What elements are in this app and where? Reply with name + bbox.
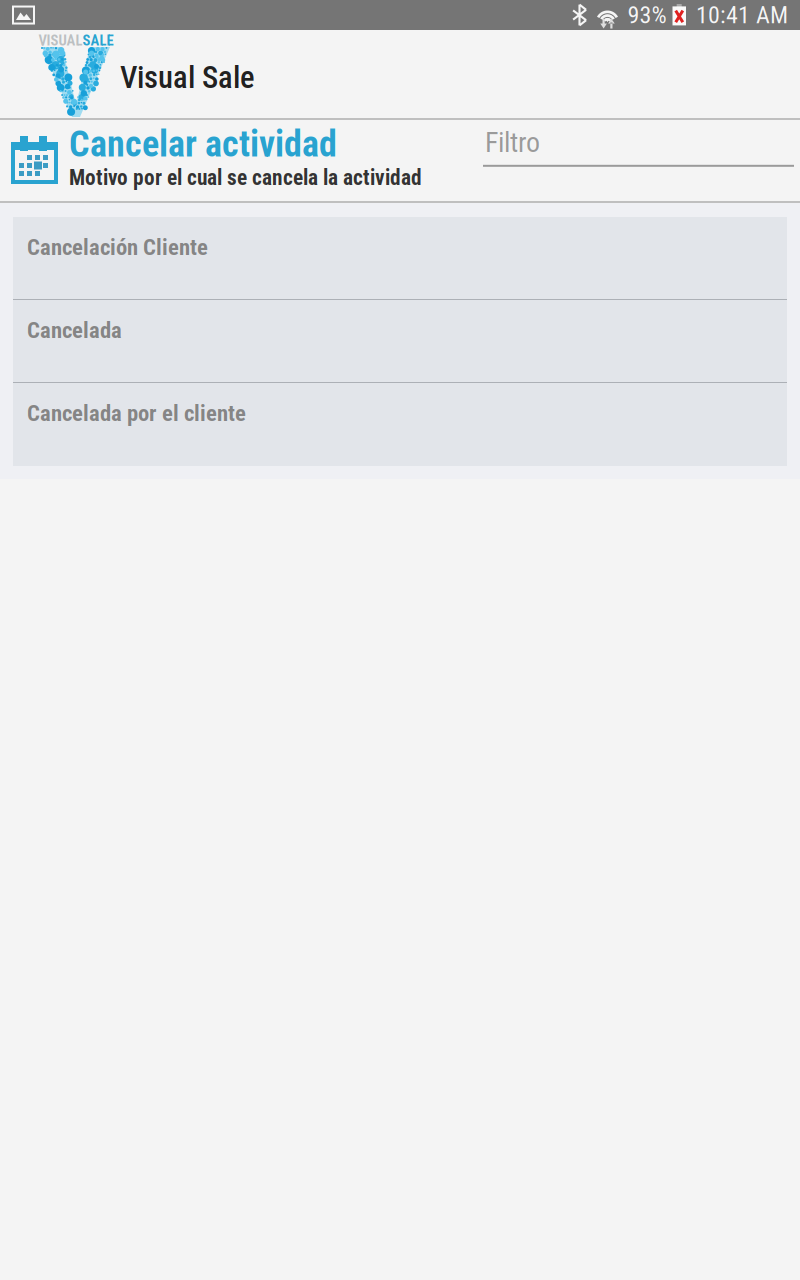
staticText: 10:41 AM	[696, 1, 788, 29]
staticText: SALE	[82, 32, 113, 49]
staticText: Cancelar actividad	[69, 123, 337, 165]
staticText: Cancelada	[27, 317, 122, 344]
staticText: 93%	[627, 1, 666, 29]
staticText: Filtro	[485, 126, 540, 159]
staticText: Cancelada por el cliente	[27, 400, 246, 427]
button[interactable]: Cancelación Cliente	[13, 217, 787, 300]
staticText: Cancelación Cliente	[27, 234, 208, 261]
button[interactable]: Filtro	[483, 120, 794, 201]
button[interactable]: Cancelada por el cliente	[13, 383, 787, 466]
button[interactable]: Cancelada	[13, 300, 787, 383]
staticText: Motivo por el cual se cancela la activid…	[69, 165, 422, 190]
button[interactable]: Visual Sale home	[41, 34, 111, 117]
staticText: VISUAL	[38, 32, 82, 49]
staticText: Visual Sale	[120, 59, 255, 95]
